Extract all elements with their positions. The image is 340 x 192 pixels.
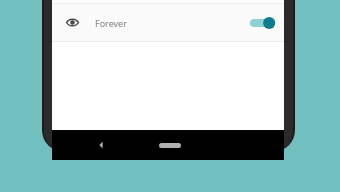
staticText: Forever xyxy=(95,17,127,29)
button[interactable]: Back xyxy=(92,136,110,154)
button[interactable]: Visibility xyxy=(52,4,284,41)
other: Visibility xyxy=(66,16,79,29)
button[interactable]: Toggle Forever xyxy=(250,15,276,31)
button[interactable]: Home xyxy=(159,143,181,148)
